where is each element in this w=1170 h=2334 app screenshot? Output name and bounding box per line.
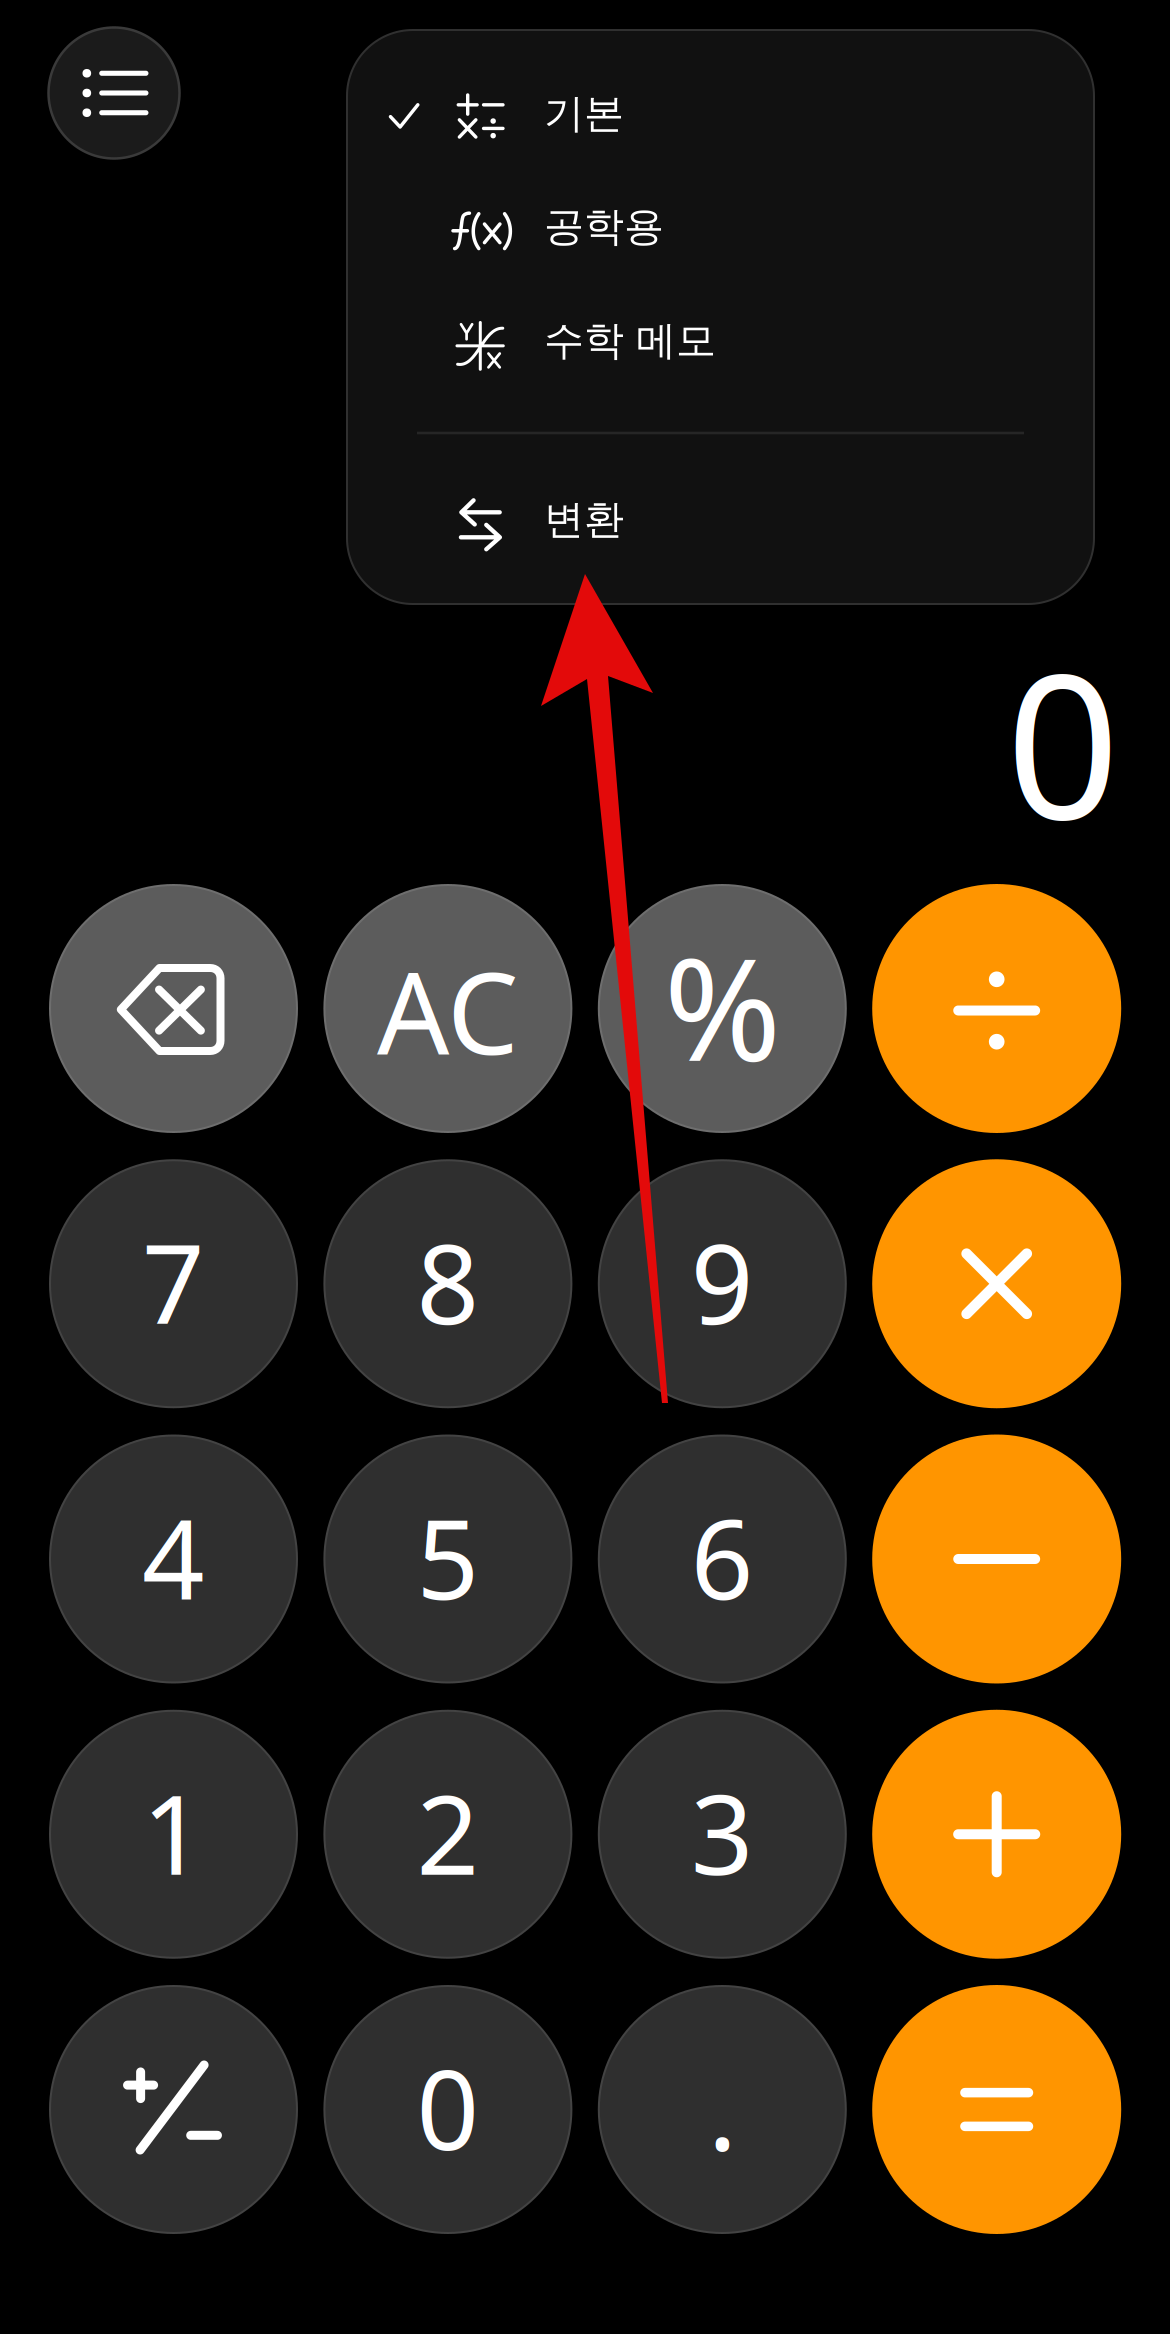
staticText: AC xyxy=(377,935,519,1086)
button[interactable]: Add xyxy=(873,1711,1120,1958)
staticText: 수학 메모 xyxy=(544,316,716,365)
button[interactable]: 기본 xyxy=(347,59,1094,172)
button[interactable]: Decimal point xyxy=(599,1986,846,2233)
button[interactable]: Divide xyxy=(873,885,1120,1132)
button[interactable]: 2 xyxy=(324,1711,571,1958)
button[interactable]: Percent xyxy=(599,885,846,1132)
staticText: 공학용 xyxy=(544,202,664,251)
staticText: 변환 xyxy=(544,495,624,544)
staticText: 기본 xyxy=(544,89,624,138)
button[interactable]: 변환 xyxy=(347,465,1094,578)
button[interactable]: 5 xyxy=(324,1435,571,1682)
staticText: 0 xyxy=(416,2035,479,2180)
staticText: 9 xyxy=(691,1209,754,1354)
staticText: 7 xyxy=(142,1209,205,1354)
staticText: 0 xyxy=(1006,610,1120,874)
staticText: . xyxy=(708,2035,737,2180)
button[interactable]: Delete xyxy=(50,885,297,1132)
button[interactable]: 공학용 xyxy=(347,172,1094,285)
button[interactable]: 8 xyxy=(324,1160,571,1407)
button[interactable]: Equals xyxy=(873,1986,1120,2233)
button[interactable]: Subtract xyxy=(873,1435,1120,1682)
button[interactable]: 0 xyxy=(324,1986,571,2233)
staticText: 6 xyxy=(691,1484,754,1630)
button[interactable]: Toggle sign xyxy=(50,1986,297,2233)
staticText: 8 xyxy=(416,1209,479,1354)
staticText: % xyxy=(664,913,781,1100)
staticText: 4 xyxy=(142,1484,205,1630)
button[interactable]: 수학 메모 xyxy=(347,286,1094,399)
button[interactable]: 1 xyxy=(50,1711,297,1958)
staticText: 3 xyxy=(691,1760,754,1905)
button[interactable]: 9 xyxy=(599,1160,846,1407)
button[interactable]: 3 xyxy=(599,1711,846,1958)
staticText: 1 xyxy=(142,1760,205,1905)
button[interactable]: 4 xyxy=(50,1435,297,1682)
button[interactable]: History xyxy=(48,27,179,158)
staticText: 5 xyxy=(416,1484,479,1630)
staticText: 2 xyxy=(416,1760,479,1905)
button[interactable]: 6 xyxy=(599,1435,846,1682)
button[interactable]: Multiply xyxy=(873,1160,1120,1407)
button[interactable]: 7 xyxy=(50,1160,297,1407)
button[interactable]: AC xyxy=(324,885,571,1132)
